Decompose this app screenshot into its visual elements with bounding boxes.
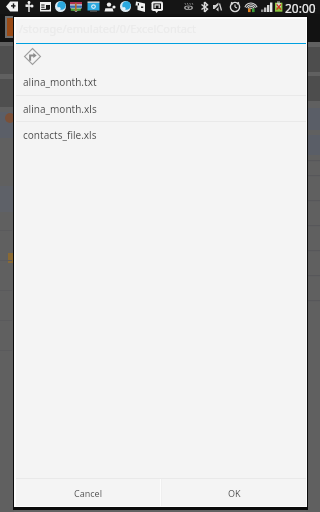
staticText: alina_month.xls [23,102,97,116]
button[interactable]: Cancel [16,479,160,506]
staticText: /storage/emulated/0/ExcelContact [19,21,197,36]
staticText: 20:00 [285,0,316,14]
button[interactable]: Go up one folder [16,44,306,69]
staticText: OK [228,487,241,499]
staticText: Cancel [74,487,103,499]
staticText: alina_month.txt [23,75,97,89]
button[interactable]: alina_month.xls [16,96,306,121]
staticText: contacts_file.xls [23,128,97,142]
button[interactable]: alina_month.txt [16,69,306,95]
button[interactable]: OK [162,479,306,506]
button[interactable]: contacts_file.xls [16,122,306,147]
